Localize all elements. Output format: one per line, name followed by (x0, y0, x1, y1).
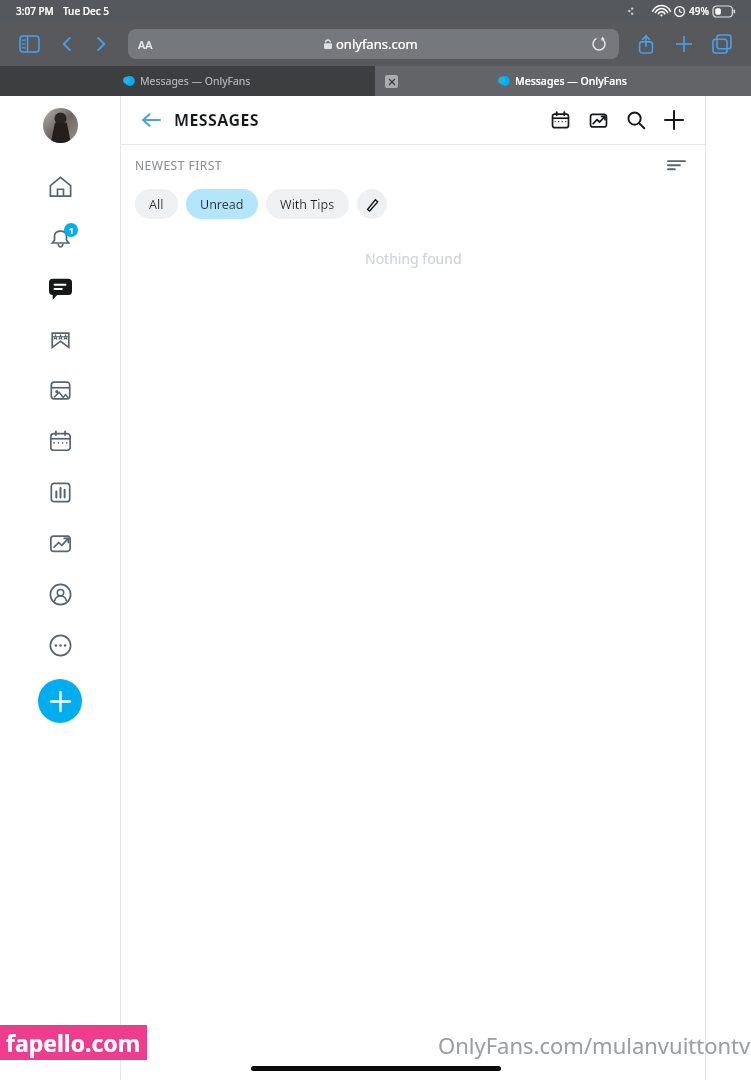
button[interactable]: Show sidebar (14, 29, 44, 59)
staticText: Tue Dec 5 (63, 4, 110, 18)
button[interactable]: Edit filters (357, 189, 387, 219)
staticText: OnlyFans.com/mulanvuittontv (438, 1030, 751, 1060)
staticText: fapello.com (6, 1027, 141, 1058)
staticText: MESSAGES (174, 109, 259, 131)
button[interactable]: Messages (35, 263, 86, 314)
button[interactable]: Forward (86, 29, 116, 59)
staticText: 3:07 PM (16, 4, 54, 18)
button[interactable]: More (35, 620, 86, 671)
button[interactable]: Queue (35, 416, 86, 467)
button[interactable]: Share (631, 29, 661, 59)
button[interactable]: Sort (661, 150, 691, 180)
staticText: Unread (200, 196, 244, 213)
button[interactable]: Statements (35, 518, 86, 569)
button[interactable]: New message (657, 103, 691, 137)
staticText: 49% (689, 4, 709, 18)
button[interactable]: Unread (186, 189, 258, 219)
button[interactable]: Tabs (707, 29, 737, 59)
button[interactable]: Home (35, 161, 86, 212)
staticText: NEWEST FIRST (135, 157, 223, 173)
button[interactable]: New tab (669, 29, 699, 59)
button[interactable]: Close tab (375, 66, 751, 96)
button[interactable]: Vault (35, 365, 86, 416)
button[interactable]: Back (135, 104, 167, 136)
staticText: Messages — OnlyFans (515, 74, 627, 88)
button[interactable]: Profile (43, 108, 78, 143)
staticText: AA (138, 37, 153, 52)
button[interactable]: With Tips (266, 189, 349, 219)
button[interactable]: Statistics (581, 103, 615, 137)
button[interactable]: Messages — OnlyFans (0, 66, 375, 96)
button[interactable]: Close tab (385, 75, 398, 88)
button[interactable]: Back (52, 29, 82, 59)
button[interactable]: All (135, 189, 178, 219)
button[interactable]: New post (38, 679, 82, 723)
button[interactable]: Profile (35, 569, 86, 620)
button[interactable]: Reload (589, 34, 609, 54)
staticText: All (149, 196, 164, 213)
button[interactable]: Statistics (35, 467, 86, 518)
staticText: onlyfans.com (336, 35, 418, 53)
staticText: Nothing found (365, 249, 462, 268)
button[interactable]: AA (128, 29, 619, 59)
button[interactable]: Notifications (35, 212, 86, 263)
staticText: Messages — OnlyFans (140, 74, 251, 88)
button[interactable]: Queue (543, 103, 577, 137)
staticText: With Tips (280, 196, 335, 213)
staticText: 1 (69, 225, 74, 236)
button[interactable]: Search (619, 103, 653, 137)
button[interactable]: Collections (35, 314, 86, 365)
